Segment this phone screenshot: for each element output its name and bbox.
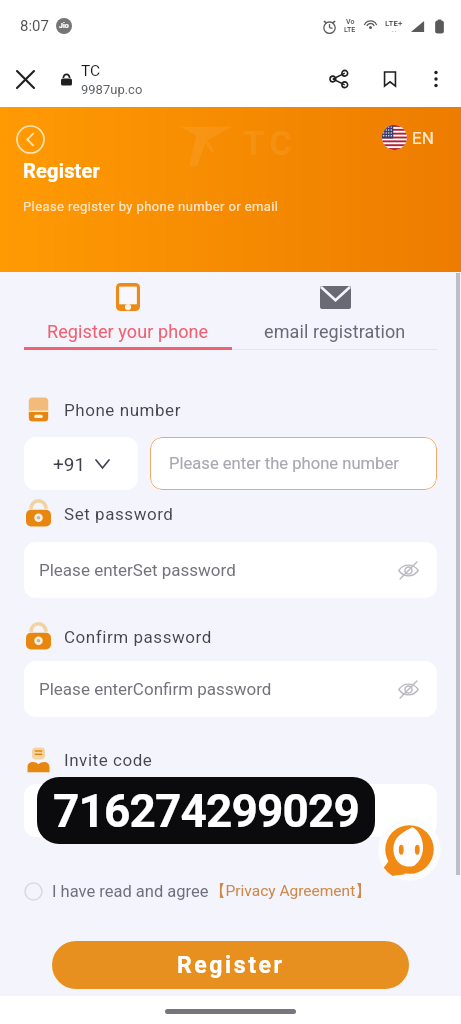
staticText: Phone number [64,400,181,420]
staticText: Please enterConfirm password [39,679,272,699]
staticText: 8:07 [20,17,49,35]
staticText: Invite code [64,750,153,770]
staticText: Please enterSet password [39,560,236,580]
button[interactable]: Please enter the phone number [150,437,437,490]
button[interactable]: Close [10,64,40,94]
button[interactable] [24,784,437,837]
staticText: 716274299029 [53,784,359,838]
staticText: 9987up.co [81,82,143,97]
staticText: +91 [53,453,86,475]
button[interactable]: More options [421,64,451,94]
staticText: Please enter the phone number [169,454,399,473]
staticText: Register [177,952,285,979]
staticText: TC [243,123,298,163]
button[interactable]: Register your phone [24,272,232,350]
staticText: LTE+ [385,19,403,28]
button[interactable]: I have read and agree [24,878,371,904]
staticText: Jio [59,22,69,30]
staticText: 【Privacy Agreement】 [210,881,371,901]
staticText: Set password [64,504,174,524]
button[interactable]: Share [324,64,354,94]
button[interactable]: EN [382,125,434,150]
staticText: LTE [344,26,356,34]
staticText: Register your phone [47,321,209,342]
button[interactable]: email registration [232,272,437,350]
button[interactable]: Back [12,121,48,157]
button[interactable]: +91 [24,437,138,490]
staticText: email registration [264,321,406,342]
staticText: Register [23,159,101,182]
staticText: Confirm password [64,627,212,647]
button[interactable]: Please enterSet password [24,542,437,598]
staticText: EN [412,128,434,148]
staticText: I have read and agree [52,882,209,901]
button[interactable]: Bookmark [375,64,405,94]
button[interactable]: Customer service chat [378,818,441,881]
staticText: · · [392,28,397,34]
staticText: TC [81,62,101,80]
staticText: Vo [346,18,355,26]
staticText: Please register by phone number or email [23,199,279,214]
button[interactable]: Register [52,941,409,989]
button[interactable]: Please enterConfirm password [24,661,437,717]
